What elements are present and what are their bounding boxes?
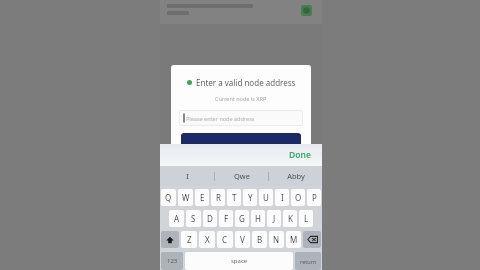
button[interactable]: Q [161, 189, 176, 206]
button[interactable]: H [251, 210, 265, 227]
staticText: K [288, 213, 293, 224]
staticText: Done [289, 149, 311, 161]
staticText: Enter a valid node address [196, 77, 296, 88]
staticText: I [281, 192, 284, 203]
staticText: O [295, 192, 302, 203]
button[interactable]: X [199, 231, 215, 248]
staticText: C [222, 234, 228, 245]
staticText: F [224, 213, 229, 224]
button[interactable]: Please enter node address [179, 110, 303, 126]
button[interactable]: U [259, 189, 273, 206]
button[interactable]: Y [243, 189, 257, 206]
button[interactable]: M [286, 231, 301, 248]
button[interactable]: J [267, 210, 281, 227]
button[interactable]: Done [286, 147, 314, 163]
button[interactable]: 123 [161, 252, 183, 270]
staticText: A [174, 213, 180, 224]
button[interactable]: W [178, 189, 193, 206]
button[interactable]: R [211, 189, 225, 206]
staticText: R [216, 192, 221, 203]
button[interactable]: Z [181, 231, 197, 248]
staticText: E [200, 192, 205, 203]
staticText: W [182, 192, 190, 203]
button[interactable]: E [195, 189, 209, 206]
staticText: I [186, 171, 189, 181]
button[interactable]: C [217, 231, 233, 248]
staticText: J [273, 213, 276, 224]
staticText: N [273, 234, 280, 245]
staticText: T [232, 192, 237, 203]
staticText: X [205, 234, 210, 245]
button[interactable]: P [307, 189, 321, 206]
button[interactable]: G [235, 210, 249, 227]
staticText: D [207, 213, 213, 224]
staticText: L [304, 213, 309, 224]
staticText: H [255, 213, 261, 224]
staticText: G [239, 213, 245, 224]
staticText: S [191, 213, 196, 224]
button[interactable]: O [291, 189, 305, 206]
staticText: Current node is XRP [215, 95, 267, 102]
button[interactable]: S [186, 210, 201, 227]
button[interactable]: N [269, 231, 284, 248]
staticText: Please enter node address [186, 115, 255, 122]
staticText: Q [165, 192, 172, 203]
button[interactable]: Backspace [303, 231, 321, 248]
button[interactable]: App badge [301, 5, 312, 16]
button[interactable]: V [235, 231, 250, 248]
button[interactable]: B [252, 231, 267, 248]
staticText: Qwe [234, 171, 250, 181]
button[interactable]: T [227, 189, 241, 206]
staticText: 123 [167, 257, 178, 265]
button[interactable]: F [219, 210, 233, 227]
staticText: P [312, 192, 317, 203]
button[interactable]: I [160, 166, 214, 186]
staticText: B [257, 234, 263, 245]
button[interactable]: return [295, 252, 321, 270]
button[interactable]: D [203, 210, 217, 227]
staticText: Abby [287, 171, 305, 181]
staticText: space [231, 257, 248, 265]
button[interactable]: Qwe [215, 166, 268, 186]
button[interactable] [181, 133, 301, 147]
staticText: V [240, 234, 245, 245]
button[interactable]: Abby [269, 166, 322, 186]
button[interactable]: A [169, 210, 184, 227]
staticText: U [263, 192, 269, 203]
button[interactable]: K [283, 210, 297, 227]
button[interactable]: space [185, 252, 293, 270]
staticText: Z [187, 234, 192, 245]
button[interactable]: I [275, 189, 289, 206]
button[interactable]: L [299, 210, 313, 227]
staticText: M [290, 234, 298, 245]
staticText: Y [248, 192, 253, 203]
staticText: return [300, 258, 317, 265]
button[interactable]: Shift [161, 231, 179, 248]
